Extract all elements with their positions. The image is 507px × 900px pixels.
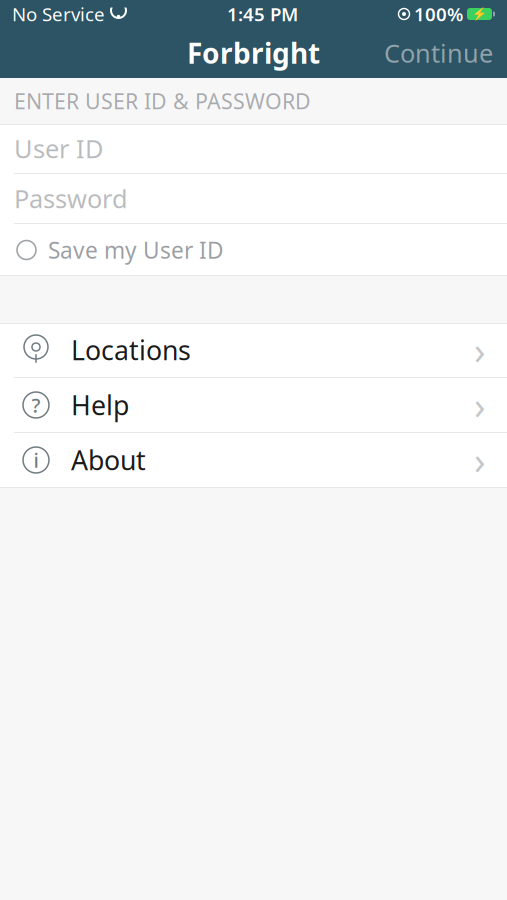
staticText: No Service	[12, 2, 105, 26]
staticText: Continue	[384, 36, 493, 70]
staticText: User ID	[14, 132, 103, 165]
button[interactable]: Save my User ID	[0, 224, 507, 276]
staticText: Help	[71, 387, 129, 423]
staticText: ENTER USER ID & PASSWORD	[14, 87, 311, 115]
staticText: About	[71, 442, 146, 478]
staticText: ⚡	[472, 7, 487, 21]
staticText: Password	[14, 182, 128, 215]
staticText: Forbright	[187, 34, 320, 72]
staticText: ?	[31, 392, 40, 418]
button[interactable]: Password	[0, 174, 507, 224]
staticText: 100%	[414, 2, 463, 26]
staticText: i	[33, 447, 38, 473]
button[interactable]: User ID	[0, 124, 507, 174]
button[interactable]: Continue	[370, 28, 507, 78]
staticText: ›	[474, 380, 486, 430]
staticText: 1:45 PM	[227, 2, 298, 26]
button[interactable]: i	[0, 433, 507, 488]
staticText: ›	[474, 435, 486, 485]
staticText: Save my User ID	[48, 235, 224, 265]
staticText: ›	[474, 325, 486, 375]
button[interactable]: Locations	[0, 323, 507, 378]
staticText: Locations	[71, 332, 191, 368]
button[interactable]: ?	[0, 378, 507, 433]
